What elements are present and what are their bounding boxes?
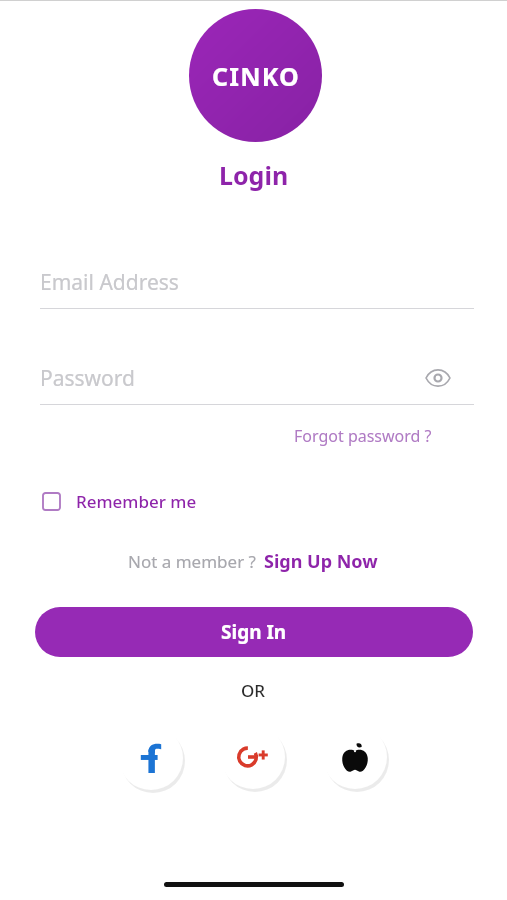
button[interactable]: Remember me [40,486,200,517]
staticText: Forgot password ? [294,425,432,447]
staticText: Password [40,364,135,393]
staticText: Not a member ? [128,550,256,573]
button[interactable]: Show password [418,358,458,398]
button[interactable]: Sign in with Apple [323,725,387,789]
staticText: Sign In [221,619,287,645]
button[interactable]: Sign in with Google [221,725,285,789]
button[interactable]: Email Address [40,268,474,309]
button[interactable]: Forgot password ? [290,422,436,450]
button[interactable]: Sign Up Now [262,546,380,577]
button[interactable]: Password [40,364,474,405]
staticText: OR [241,679,266,702]
staticText: Login [219,158,289,192]
staticText: Remember me [76,490,197,513]
button[interactable]: Sign In [35,607,473,657]
staticText: Email Address [40,268,179,297]
staticText: CINKO [212,59,300,93]
button[interactable]: Sign in with Facebook [119,726,183,790]
staticText: Sign Up Now [264,549,378,574]
